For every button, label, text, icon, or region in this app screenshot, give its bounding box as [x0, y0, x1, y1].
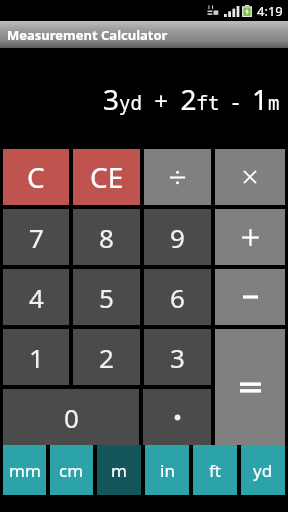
button[interactable]: 8: [73, 209, 140, 265]
staticText: mm: [9, 459, 41, 482]
staticText: 7: [29, 220, 44, 255]
button[interactable]: Decimal point: [143, 389, 211, 445]
button[interactable]: 4: [3, 269, 69, 325]
button[interactable]: mm: [3, 445, 46, 495]
staticText: 5: [99, 280, 114, 315]
staticText: m: [111, 459, 127, 482]
staticText: Measurement Calculator: [7, 26, 168, 44]
staticText: 1: [29, 340, 44, 375]
button[interactable]: Plus: [215, 209, 285, 265]
staticText: cm: [59, 459, 84, 482]
staticText: 2: [99, 340, 114, 375]
button[interactable]: ft: [193, 445, 237, 495]
button[interactable]: 3: [144, 329, 211, 385]
button[interactable]: Divide: [144, 149, 211, 205]
button[interactable]: 6: [144, 269, 211, 325]
button[interactable]: m: [97, 445, 141, 495]
button[interactable]: in: [145, 445, 189, 495]
button[interactable]: 0: [3, 389, 139, 445]
button[interactable]: Equals: [215, 329, 285, 445]
button[interactable]: yd: [241, 445, 285, 495]
staticText: 4:19: [257, 2, 283, 20]
button[interactable]: CE: [73, 149, 140, 205]
button[interactable]: 2: [73, 329, 140, 385]
button[interactable]: 9: [144, 209, 211, 265]
staticText: yd: [253, 459, 273, 482]
staticText: 3: [170, 340, 185, 375]
staticText: 6: [170, 280, 185, 315]
staticText: 0: [64, 400, 79, 435]
staticText: C: [27, 158, 45, 196]
button[interactable]: Minus: [215, 269, 285, 325]
staticText: CE: [90, 158, 124, 196]
staticText: 4: [29, 280, 44, 315]
staticText: 8: [99, 220, 114, 255]
staticText: ft: [209, 459, 221, 482]
button[interactable]: 7: [3, 209, 69, 265]
button[interactable]: Multiply: [215, 149, 285, 205]
staticText: 9: [170, 220, 185, 255]
button[interactable]: 1: [3, 329, 69, 385]
staticText: 3yd + 2ft - 1m: [103, 80, 280, 118]
button[interactable]: cm: [50, 445, 93, 495]
button[interactable]: C: [3, 149, 69, 205]
button[interactable]: 5: [73, 269, 140, 325]
staticText: in: [160, 459, 175, 482]
